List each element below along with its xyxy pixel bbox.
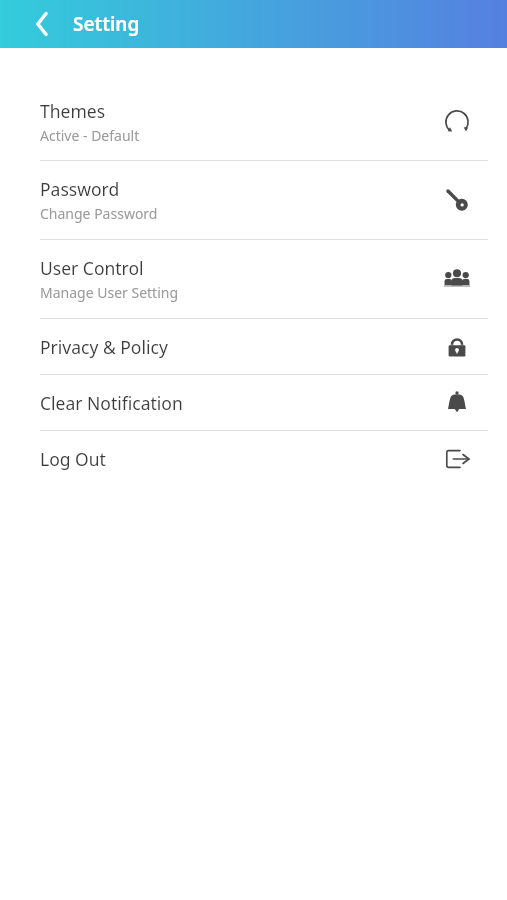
other: Password (442, 185, 472, 215)
other: User Control (442, 264, 472, 294)
staticText: Password (40, 177, 120, 201)
staticText: Setting (73, 11, 140, 37)
button[interactable]: User Control (0, 240, 507, 319)
staticText: Themes (40, 99, 106, 123)
button[interactable]: Clear Notification (0, 375, 507, 431)
button[interactable]: Back (22, 4, 62, 44)
button[interactable]: Themes (0, 83, 507, 161)
staticText: Clear Notification (40, 391, 183, 415)
staticText: Change Password (40, 204, 158, 223)
staticText: Log Out (40, 447, 106, 471)
button[interactable]: Password (0, 161, 507, 240)
other: Themes (442, 107, 472, 137)
other: Clear Notification (442, 388, 472, 418)
button[interactable]: Privacy & Policy (0, 319, 507, 375)
staticText: Privacy & Policy (40, 335, 168, 359)
button[interactable]: Log Out (0, 431, 507, 486)
staticText: Manage User Setting (40, 283, 179, 302)
staticText: Active - Default (40, 126, 140, 145)
staticText: User Control (40, 256, 144, 280)
other: Privacy and Policy (442, 332, 472, 362)
other: Log Out (442, 444, 472, 474)
